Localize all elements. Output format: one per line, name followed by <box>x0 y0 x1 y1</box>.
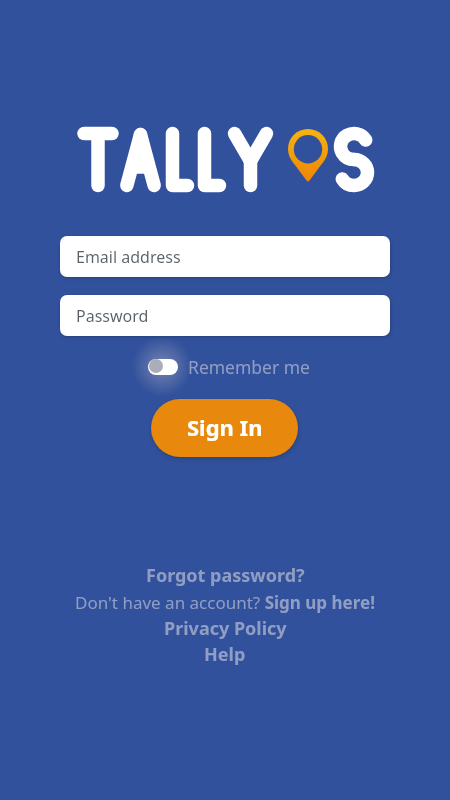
button[interactable]: Don't have an account? Sign up here! <box>0 590 450 614</box>
staticText: Forgot password? <box>146 563 305 587</box>
button[interactable]: Help <box>0 642 450 666</box>
button[interactable]: Forgot password? <box>0 563 450 587</box>
button[interactable]: Sign In <box>151 399 298 457</box>
staticText: Email address <box>76 246 181 268</box>
staticText: Don't have an account? Sign up here! <box>75 591 375 614</box>
button[interactable]: Password <box>60 295 390 336</box>
staticText: Privacy Policy <box>164 616 287 640</box>
button[interactable]: Remember me <box>140 352 310 380</box>
staticText: Help <box>204 642 246 666</box>
staticText: Remember me <box>188 355 310 379</box>
button[interactable]: Privacy Policy <box>0 616 450 640</box>
button[interactable]: Email address <box>60 236 390 277</box>
staticText: Sign In <box>187 412 263 442</box>
staticText: Password <box>76 305 149 327</box>
